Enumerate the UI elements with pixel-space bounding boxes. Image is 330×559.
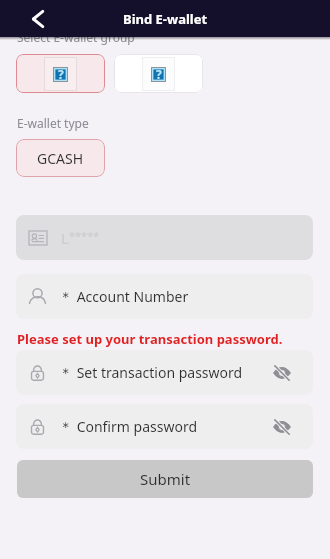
staticText: Bind E-wallet	[123, 10, 208, 28]
staticText: Submit	[140, 469, 191, 489]
staticText: E-wallet type	[17, 115, 89, 131]
staticText: ＊ Account Number	[59, 287, 189, 306]
button[interactable]: GCASH	[16, 139, 105, 177]
staticText: L	[61, 228, 69, 248]
button[interactable]: ?	[16, 54, 105, 93]
staticText: Please set up your transaction password.	[17, 330, 283, 348]
staticText: GCASH	[37, 149, 84, 168]
button[interactable]: ＊ Set transaction password	[16, 350, 313, 395]
button[interactable]: ＊ Account Number	[16, 274, 313, 319]
button[interactable]: Back	[25, 6, 51, 32]
staticText: ＊ Set transaction password	[59, 363, 243, 382]
button[interactable]: ?	[114, 54, 203, 93]
staticText: *****	[69, 228, 100, 243]
button[interactable]: Show password	[273, 365, 291, 381]
staticText: ＊ Confirm password	[59, 417, 198, 436]
staticText: ?	[156, 66, 162, 81]
staticText: ?	[58, 66, 64, 81]
staticText: Select E-wallet group	[17, 29, 135, 45]
button[interactable]: L	[16, 215, 313, 260]
button[interactable]: Submit	[17, 460, 313, 498]
button[interactable]: ＊ Confirm password	[16, 404, 313, 449]
button[interactable]: Show password	[273, 419, 291, 435]
